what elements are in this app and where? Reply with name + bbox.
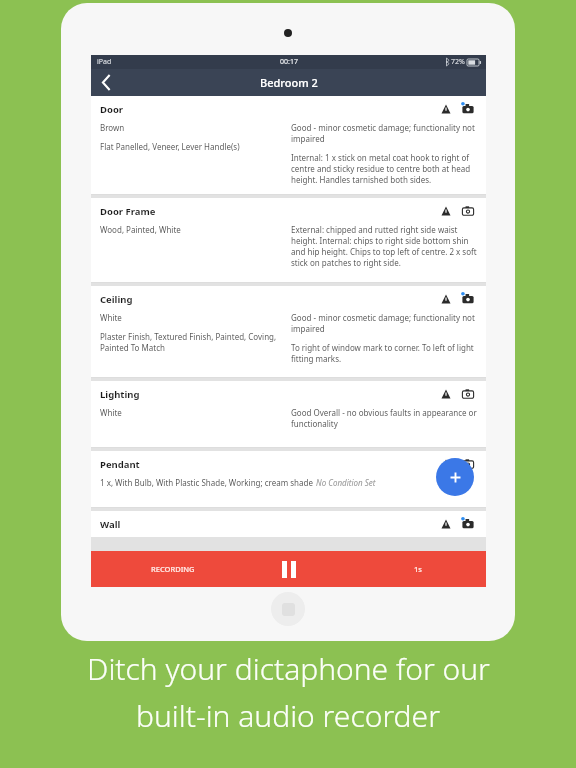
button[interactable]: Warning bbox=[438, 291, 454, 307]
staticText: 72% bbox=[451, 57, 465, 67]
button[interactable]: Ceiling bbox=[91, 286, 486, 378]
staticText: White bbox=[100, 407, 122, 418]
button[interactable]: Back bbox=[91, 69, 121, 96]
staticText: Wall bbox=[100, 518, 121, 531]
staticText: No Condition Set bbox=[316, 477, 376, 488]
staticText: Wood, Painted, White bbox=[100, 224, 181, 235]
staticText: Ceiling bbox=[100, 293, 133, 306]
button[interactable]: Camera bbox=[459, 100, 477, 118]
button[interactable] bbox=[271, 592, 305, 626]
button[interactable]: Lighting bbox=[91, 381, 486, 448]
button[interactable]: Pendant bbox=[91, 451, 486, 508]
staticText: Brown bbox=[100, 122, 125, 133]
button[interactable]: Warning bbox=[438, 516, 454, 532]
staticText: Lighting bbox=[100, 388, 140, 401]
button[interactable]: RECORDING bbox=[91, 551, 486, 587]
staticText: Good - minor cosmetic damage; functional… bbox=[291, 312, 477, 334]
staticText: Good - minor cosmetic damage; functional… bbox=[291, 122, 477, 144]
button[interactable]: Add item bbox=[436, 458, 474, 496]
staticText: 00:17 bbox=[280, 57, 298, 67]
button[interactable]: Camera bbox=[459, 385, 477, 403]
staticText: 1s bbox=[414, 564, 422, 574]
staticText: Internal: 1 x stick on metal coat hook t… bbox=[291, 152, 477, 185]
staticText: Good Overall - no obvious faults in appe… bbox=[291, 407, 477, 429]
staticText: iPad bbox=[97, 57, 112, 67]
staticText: Ditch your dictaphone for our bbox=[87, 648, 490, 689]
button[interactable]: Camera bbox=[459, 515, 477, 533]
staticText: Pendant bbox=[100, 458, 140, 471]
staticText: 1 x, With Bulb, With Plastic Shade, Work… bbox=[100, 477, 316, 488]
button[interactable]: Warning bbox=[438, 101, 454, 117]
staticText: built-in audio recorder bbox=[136, 695, 440, 736]
staticText: External: chipped and rutted right side … bbox=[291, 224, 477, 268]
staticText: To right of window mark to corner. To le… bbox=[291, 342, 477, 364]
staticText: Door Frame bbox=[100, 205, 156, 218]
staticText: White bbox=[100, 312, 122, 323]
button[interactable]: Camera bbox=[459, 455, 477, 473]
button[interactable]: Door Frame bbox=[91, 198, 486, 283]
button[interactable]: Wall bbox=[91, 511, 486, 537]
button[interactable]: Warning bbox=[438, 386, 454, 402]
staticText: Flat Panelled, Veneer, Lever Handle(s) bbox=[100, 141, 240, 152]
button[interactable]: Warning bbox=[438, 456, 454, 472]
staticText: Bedroom 2 bbox=[260, 75, 318, 90]
staticText: Plaster Finish, Textured Finish, Painted… bbox=[100, 331, 285, 353]
button[interactable]: Warning bbox=[438, 203, 454, 219]
button[interactable]: Door bbox=[91, 96, 486, 195]
staticText: Door bbox=[100, 103, 124, 116]
button[interactable]: Camera bbox=[459, 202, 477, 220]
staticText: RECORDING bbox=[151, 564, 195, 574]
button[interactable]: Camera bbox=[459, 290, 477, 308]
